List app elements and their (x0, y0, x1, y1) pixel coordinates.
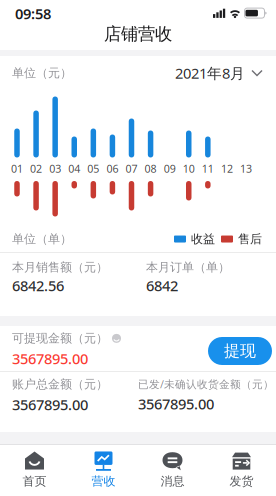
button[interactable]: 发货 (207, 445, 276, 496)
staticText: 售后 (238, 232, 262, 246)
staticText: 10 (183, 161, 195, 176)
staticText: 本月销售额（元） (12, 260, 108, 275)
staticText: 已发/未确认收货金额（元） (138, 377, 274, 391)
staticText: 首页 (22, 474, 46, 489)
staticText: 06 (106, 161, 118, 176)
staticText: 提现 (224, 341, 256, 361)
staticText: 营收 (91, 474, 115, 489)
staticText: 本月订单（单） (146, 260, 230, 275)
staticText: 收益 (191, 232, 215, 246)
staticText: 6842 (146, 276, 178, 295)
staticText: 店铺营收 (104, 23, 172, 45)
staticText: 09:58 (15, 4, 51, 23)
button[interactable]: 首页 (0, 445, 69, 496)
staticText: 08 (145, 161, 157, 176)
staticText: 3567895.00 (12, 395, 88, 414)
staticText: 可提现金额（元） (12, 331, 108, 346)
staticText: 3567895.00 (138, 394, 214, 414)
staticText: 3567895.00 (12, 349, 88, 368)
staticText: 04 (68, 161, 80, 176)
staticText: 05 (87, 161, 99, 176)
staticText: 02 (30, 161, 42, 176)
staticText: 2021年8月 (175, 63, 245, 83)
button[interactable]: 提现 (208, 337, 272, 365)
staticText: 发货 (229, 474, 253, 489)
staticText: 09 (164, 161, 176, 176)
staticText: 01 (11, 161, 23, 176)
staticText: 13 (240, 161, 252, 176)
staticText: 单位（单） (12, 232, 72, 246)
staticText: 12 (221, 161, 233, 176)
button[interactable]: 消息 (138, 445, 207, 496)
staticText: 消息 (160, 474, 184, 489)
staticText: 03 (49, 161, 61, 176)
staticText: 6842.56 (12, 276, 64, 295)
button[interactable]: 营收 (69, 445, 138, 496)
staticText: 单位（元） (12, 66, 72, 80)
button[interactable]: 隐藏金额 (112, 334, 121, 343)
staticText: 账户总金额（元） (12, 377, 108, 392)
staticText: 11 (202, 161, 214, 176)
staticText: 07 (125, 161, 137, 176)
button[interactable]: 2021年8月 (175, 63, 263, 83)
